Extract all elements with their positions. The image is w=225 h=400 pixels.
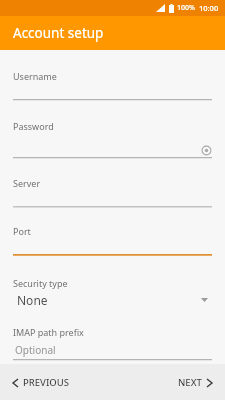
staticText: None xyxy=(17,292,48,308)
button[interactable]: Security type xyxy=(13,277,212,308)
staticText: Username xyxy=(13,70,57,82)
staticText: IMAP path prefix xyxy=(13,326,84,338)
staticText: 10:00 xyxy=(199,3,219,13)
staticText: Optional xyxy=(15,343,56,357)
staticText: Port xyxy=(13,225,31,237)
staticText: Server xyxy=(13,177,41,189)
staticText: 100% xyxy=(177,3,195,13)
staticText: NEXT xyxy=(178,376,202,389)
button[interactable]: IMAP path prefix xyxy=(13,326,212,362)
button[interactable]: Password xyxy=(13,120,212,160)
button[interactable]: PREVIOUS xyxy=(9,372,73,393)
button[interactable]: Port xyxy=(13,225,212,257)
staticText: Security type xyxy=(13,277,68,289)
button[interactable]: Username xyxy=(13,70,212,102)
button[interactable]: Show password xyxy=(201,145,212,156)
staticText: PREVIOUS xyxy=(23,376,69,389)
button[interactable]: Server xyxy=(13,177,212,209)
button[interactable]: NEXT xyxy=(174,372,216,393)
staticText: Account setup xyxy=(13,24,104,42)
staticText: Password xyxy=(13,120,54,132)
